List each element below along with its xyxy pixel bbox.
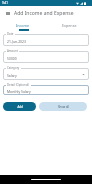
button[interactable]: Show all [39, 102, 87, 111]
button[interactable]: Salary [3, 68, 89, 80]
staticText: Show all [58, 105, 69, 109]
button[interactable]: Expense [46, 19, 92, 32]
staticText: Salary [7, 73, 17, 78]
button[interactable]: Open navigation menu [3, 9, 12, 18]
button[interactable]: 21-Jun-2023 [3, 34, 89, 46]
staticText: Category [7, 66, 20, 70]
staticText: Amount [7, 49, 18, 53]
button[interactable]: Income [0, 19, 46, 32]
staticText: Income [16, 23, 30, 28]
staticText: 50000 [7, 56, 17, 61]
button[interactable]: Add [3, 102, 36, 111]
staticText: Monthly Salary [7, 89, 31, 94]
button[interactable]: Monthly Salary [3, 85, 89, 95]
button[interactable]: 50000 [3, 51, 89, 63]
staticText: 21-Jun-2023 [7, 39, 26, 44]
staticText: Add [17, 105, 23, 109]
staticText: Date [7, 32, 14, 36]
staticText: Add Income and Expense [14, 10, 74, 17]
staticText: 9:41 [2, 1, 8, 5]
staticText: Expense [62, 23, 77, 28]
staticText: Detail (Optional) [7, 83, 30, 87]
